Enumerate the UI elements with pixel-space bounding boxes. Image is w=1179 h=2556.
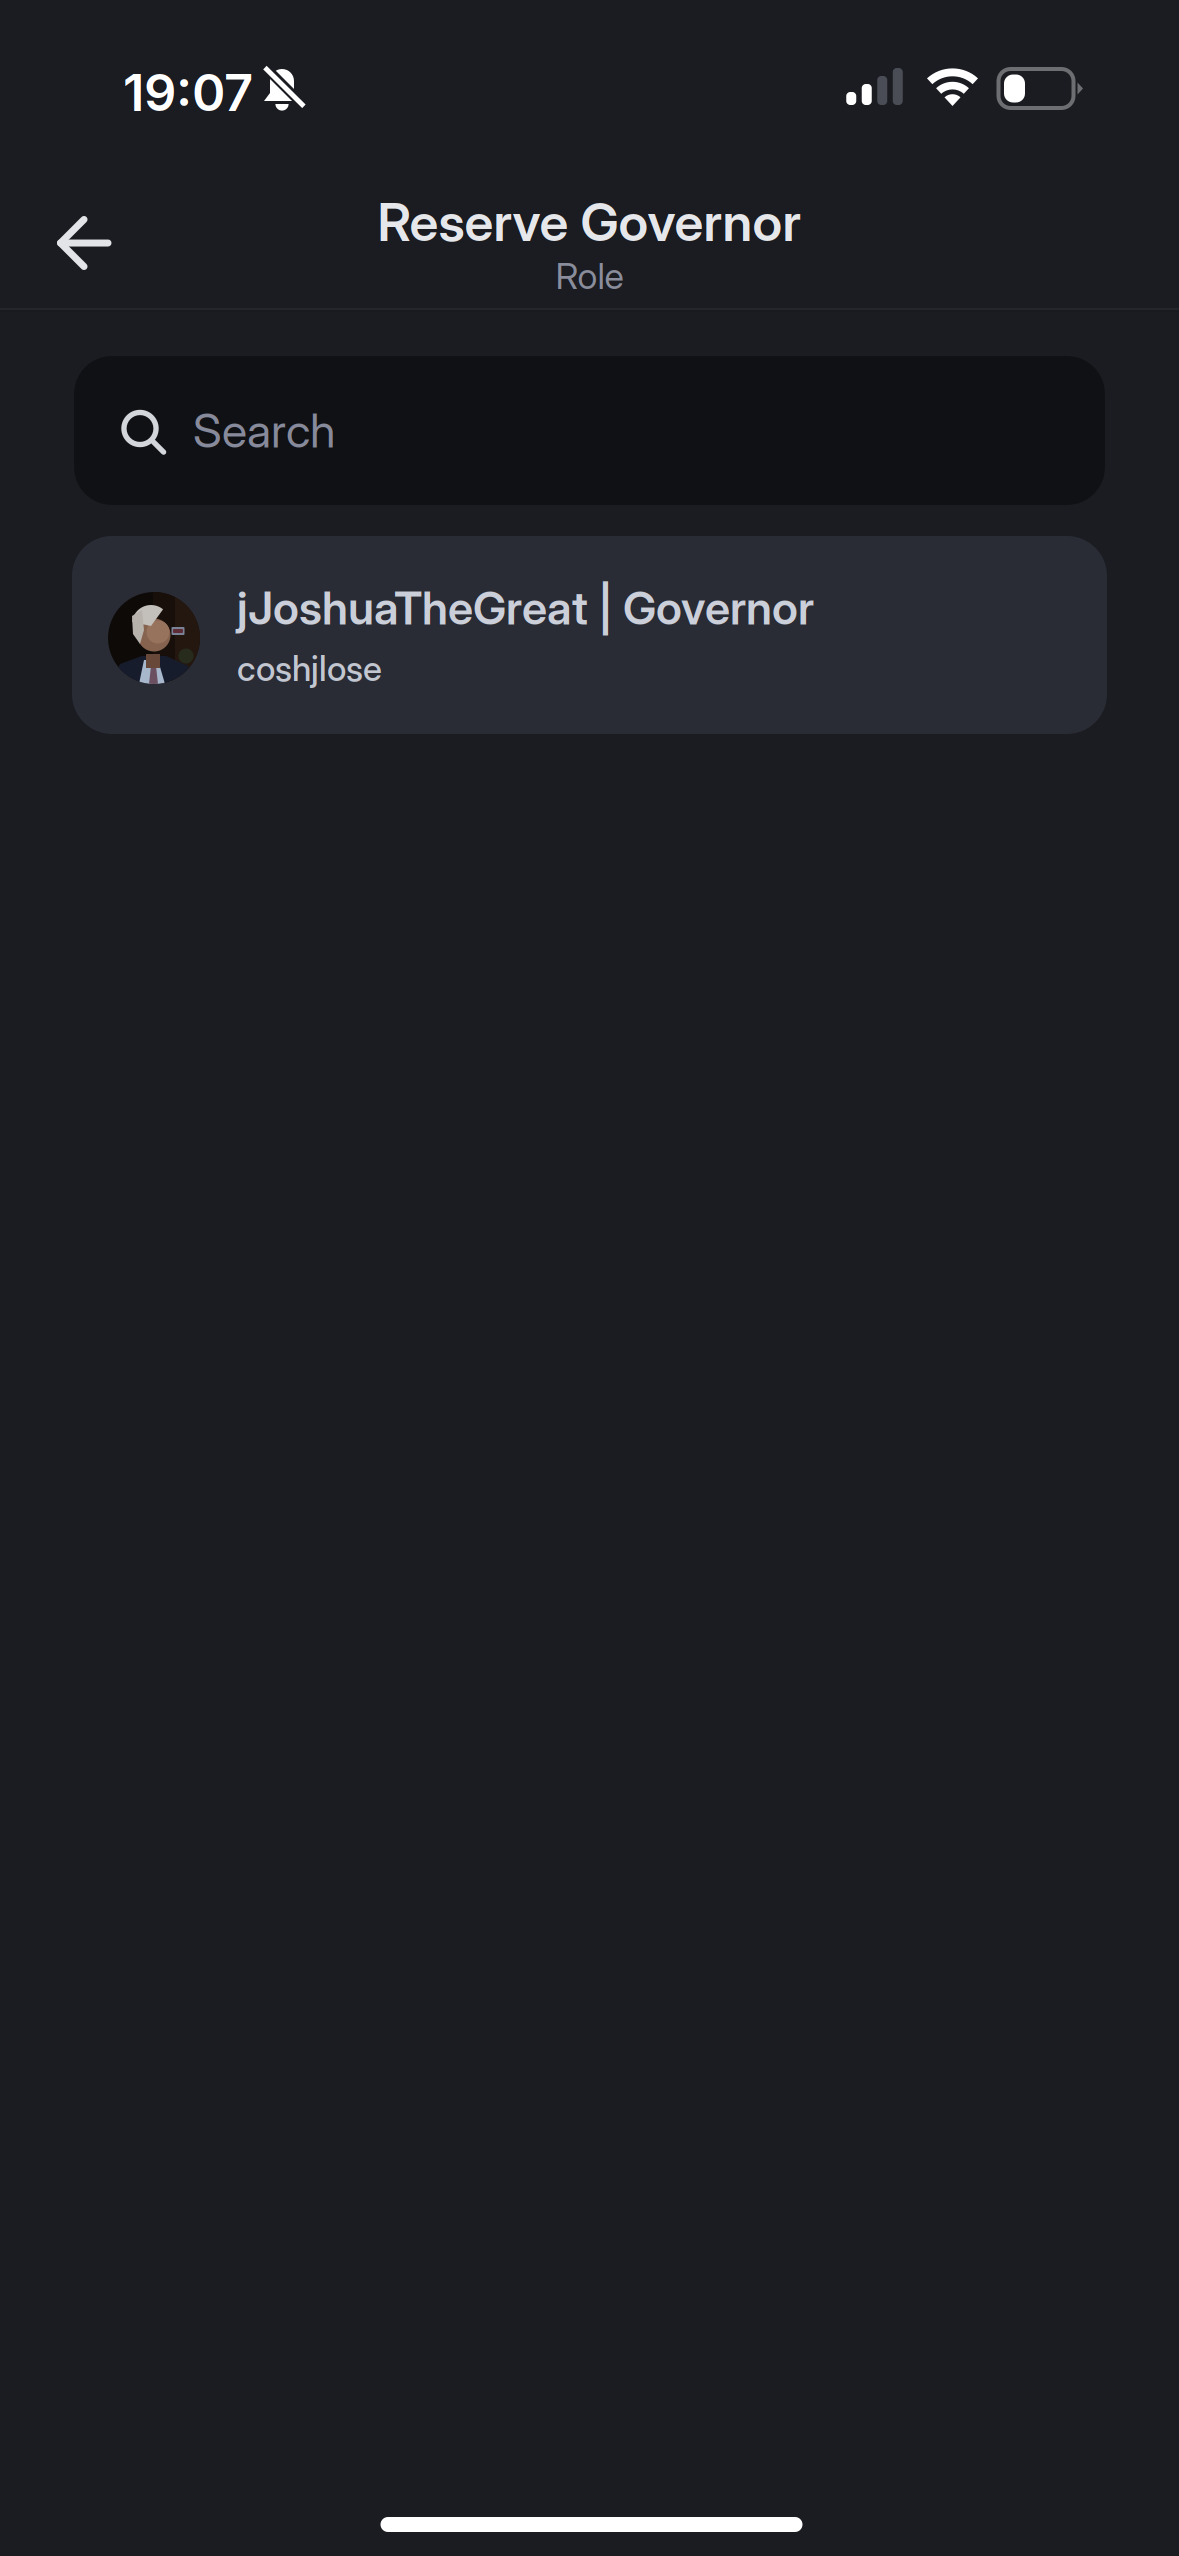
staticText: Role	[555, 254, 623, 298]
staticText: Search	[193, 402, 336, 459]
staticText: coshjlose	[237, 647, 382, 689]
staticText: Reserve Governor	[377, 190, 801, 253]
staticText: 19:07	[123, 62, 253, 123]
button[interactable]: Search	[74, 356, 1105, 505]
staticText: jJoshuaTheGreat | Governor	[237, 581, 814, 635]
button[interactable]: jJoshuaTheGreat | Governor	[72, 536, 1107, 734]
button[interactable]: Back	[0, 182, 141, 284]
